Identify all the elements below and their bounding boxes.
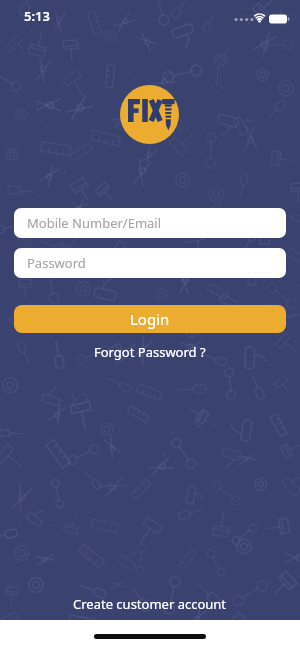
button[interactable]: Forgot Password ? — [94, 343, 206, 361]
staticText: Password — [27, 254, 86, 272]
button[interactable]: Mobile Number/Email — [14, 208, 286, 238]
button[interactable]: Password — [14, 248, 286, 278]
staticText: 5:13 — [24, 7, 50, 25]
staticText: Create customer account — [73, 595, 227, 613]
staticText: Forgot Password ? — [94, 343, 206, 361]
button[interactable]: Login — [14, 305, 286, 333]
staticText: Mobile Number/Email — [27, 214, 162, 232]
button[interactable]: Create customer account — [73, 595, 227, 613]
staticText: Login — [130, 309, 170, 329]
